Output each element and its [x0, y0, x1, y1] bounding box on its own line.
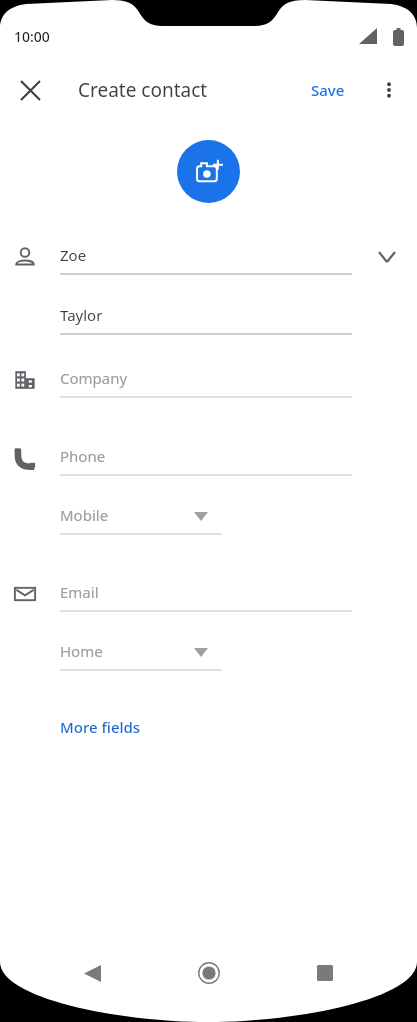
- button[interactable]: Back: [68, 949, 116, 997]
- staticText: 10:00: [14, 27, 50, 46]
- button[interactable]: Home: [0, 626, 417, 685]
- button[interactable]: Mobile: [0, 490, 417, 549]
- staticText: Save: [311, 80, 345, 100]
- staticText: Phone: [60, 446, 106, 466]
- button[interactable]: Save: [303, 74, 353, 106]
- button[interactable]: More options: [369, 70, 409, 110]
- staticText: Taylor: [60, 305, 103, 325]
- staticText: Email: [60, 582, 99, 602]
- button[interactable]: Company: [0, 366, 417, 412]
- button[interactable]: Add photo: [177, 140, 240, 203]
- button[interactable]: Email: [0, 580, 417, 626]
- staticText: Home: [60, 641, 103, 661]
- button[interactable]: Taylor: [0, 289, 417, 349]
- staticText: Mobile: [60, 505, 109, 525]
- button[interactable]: Expand name fields: [367, 237, 407, 277]
- button[interactable]: Phone: [0, 444, 417, 490]
- button[interactable]: Recent apps: [301, 949, 349, 997]
- staticText: More fields: [60, 717, 141, 737]
- button[interactable]: Close: [10, 70, 50, 110]
- button[interactable]: More fields: [52, 711, 149, 743]
- button[interactable]: Home: [185, 949, 233, 997]
- staticText: Company: [60, 368, 128, 388]
- staticText: Create contact: [78, 77, 208, 103]
- button[interactable]: Zoe: [0, 243, 417, 289]
- staticText: Zoe: [60, 245, 87, 265]
